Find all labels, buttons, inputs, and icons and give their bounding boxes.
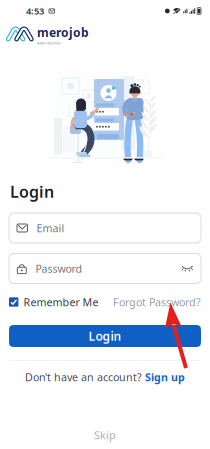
button[interactable]: Email — [9, 213, 201, 243]
button[interactable]: Password — [9, 253, 201, 283]
button[interactable]: Remember Me — [9, 295, 98, 309]
button[interactable]: Skip — [0, 426, 210, 444]
staticText: Skip — [94, 428, 116, 442]
staticText: Don't have an account? — [25, 370, 145, 384]
button[interactable]: Sign up — [145, 370, 185, 384]
staticText: merojob — [37, 24, 89, 40]
button[interactable]: Forgot Password? — [113, 295, 201, 309]
staticText: AIM HIGHER — [37, 40, 61, 46]
staticText: Sign up — [145, 370, 185, 384]
staticText: Email — [36, 221, 64, 235]
staticText: Forgot Password? — [113, 295, 201, 309]
button[interactable]: Login — [9, 325, 201, 347]
staticText: Password — [36, 261, 83, 276]
staticText: Login — [88, 328, 121, 344]
staticText: 4:53 — [26, 5, 44, 17]
staticText: Remember Me — [23, 295, 98, 309]
staticText: Login — [10, 181, 54, 202]
